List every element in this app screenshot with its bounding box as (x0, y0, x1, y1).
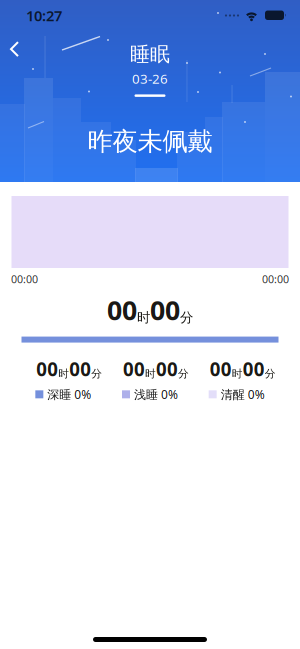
staticText: 00时00分 (210, 357, 276, 381)
staticText: 浅睡 0% (134, 386, 178, 402)
staticText: 00时00分 (123, 357, 189, 381)
staticText: 00时00分 (107, 292, 193, 328)
staticText: 深睡 0% (47, 386, 91, 402)
staticText: 睡眠 (130, 42, 170, 67)
staticText: 00时00分 (36, 357, 102, 381)
staticText: 03-26 (132, 70, 168, 87)
staticText: 清醒 0% (221, 386, 265, 402)
staticText: 昨夜未佩戴 (87, 126, 212, 157)
button[interactable]: Back (0, 34, 30, 64)
staticText: 00:00 (11, 272, 38, 286)
staticText: 00:00 (262, 272, 289, 286)
staticText: 10:27 (26, 6, 62, 25)
